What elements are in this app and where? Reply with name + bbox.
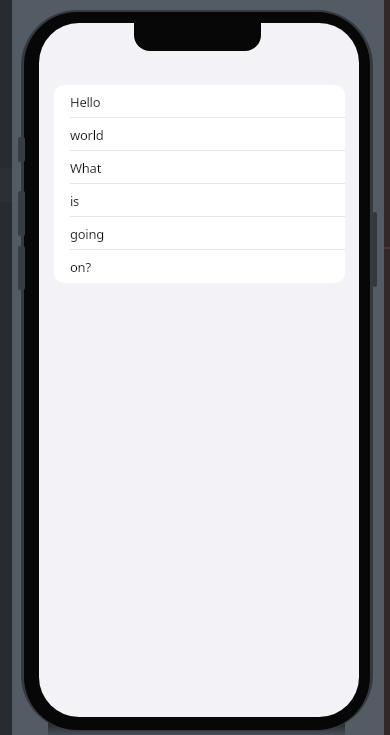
button[interactable]: is — [54, 184, 345, 217]
button[interactable]: What — [54, 151, 345, 184]
staticText: on? — [70, 258, 91, 276]
button[interactable]: on? — [54, 250, 345, 283]
button[interactable]: world — [54, 118, 345, 151]
staticText: going — [70, 225, 104, 243]
button[interactable]: Hello — [54, 85, 345, 118]
staticText: is — [70, 192, 80, 210]
staticText: Hello — [70, 93, 101, 111]
staticText: What — [70, 159, 102, 177]
button[interactable]: going — [54, 217, 345, 250]
staticText: world — [70, 126, 104, 144]
